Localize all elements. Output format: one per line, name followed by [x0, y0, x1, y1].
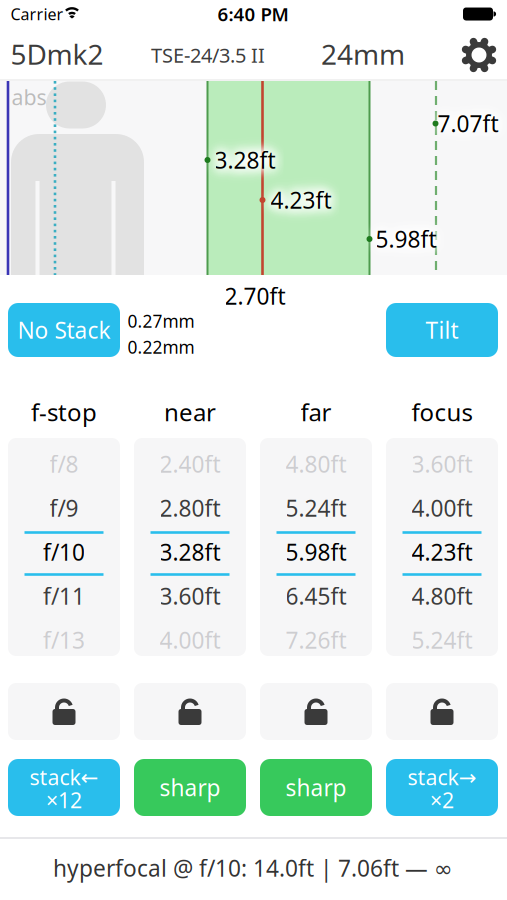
- staticText: ×2: [430, 786, 454, 814]
- staticText: 5Dmk2: [10, 35, 103, 73]
- staticText: f/13: [43, 625, 85, 655]
- staticText: 0.22mm: [127, 335, 194, 358]
- button[interactable]: TSE-24/3.5 II: [151, 42, 265, 68]
- staticText: 4.23ft: [270, 185, 331, 215]
- staticText: Carrier: [10, 3, 63, 25]
- staticText: f/9: [49, 493, 78, 523]
- staticText: f/11: [43, 581, 85, 611]
- staticText: 3.60ft: [411, 449, 472, 479]
- staticText: 6.45ft: [285, 581, 346, 611]
- button[interactable]: sharp: [134, 759, 246, 816]
- staticText: 2.40ft: [159, 449, 220, 479]
- button[interactable]: Lock near: [134, 683, 246, 740]
- staticText: far: [300, 396, 331, 428]
- button[interactable]: sharp: [260, 759, 372, 816]
- staticText: 0.27mm: [127, 309, 194, 332]
- staticText: near: [164, 396, 216, 428]
- staticText: 7.26ft: [285, 625, 346, 655]
- staticText: 4.23ft: [411, 537, 472, 567]
- staticText: f/8: [49, 449, 78, 479]
- button[interactable]: Lock focus: [386, 683, 498, 740]
- button[interactable]: f-stop picker: [8, 438, 120, 656]
- staticText: 4.80ft: [411, 581, 472, 611]
- staticText: 4.80ft: [285, 449, 346, 479]
- staticText: 3.60ft: [159, 581, 220, 611]
- staticText: 6:40 PM: [217, 2, 288, 26]
- staticText: 7.07ft: [437, 108, 498, 138]
- staticText: 5.98ft: [285, 537, 346, 567]
- button[interactable]: stack←: [8, 759, 120, 816]
- staticText: 3.28ft: [159, 537, 220, 567]
- button[interactable]: far picker: [260, 438, 372, 656]
- button[interactable]: near picker: [134, 438, 246, 656]
- button[interactable]: 24mm: [321, 35, 405, 73]
- staticText: f-stop: [31, 396, 97, 428]
- staticText: hyperfocal @ f/10: 14.0ft | 7.06ft — ∞: [53, 853, 453, 883]
- staticText: ×12: [46, 786, 82, 814]
- staticText: 2.80ft: [159, 493, 220, 523]
- staticText: TSE-24/3.5 II: [151, 42, 265, 68]
- button[interactable]: Settings: [459, 35, 499, 75]
- staticText: 4.00ft: [159, 625, 220, 655]
- staticText: 2.70ft: [224, 281, 285, 311]
- staticText: No Stack: [17, 315, 110, 345]
- staticText: sharp: [159, 772, 220, 802]
- button[interactable]: 5Dmk2: [10, 35, 103, 73]
- button[interactable]: stack→: [386, 759, 498, 816]
- staticText: 5.98ft: [375, 224, 436, 254]
- staticText: 5.24ft: [411, 625, 472, 655]
- staticText: sharp: [285, 772, 346, 802]
- staticText: 3.28ft: [214, 145, 275, 175]
- staticText: 4.00ft: [411, 493, 472, 523]
- staticText: 24mm: [321, 35, 405, 73]
- button[interactable]: Lock far: [260, 683, 372, 740]
- staticText: focus: [411, 396, 472, 428]
- staticText: f/10: [43, 537, 85, 567]
- staticText: stack→: [407, 763, 476, 791]
- staticText: Tilt: [425, 315, 458, 345]
- button[interactable]: Lock f-stop: [8, 683, 120, 740]
- staticText: stack←: [29, 763, 98, 791]
- button[interactable]: Tilt: [386, 303, 498, 357]
- button[interactable]: No Stack: [8, 303, 120, 357]
- staticText: abs: [11, 83, 46, 111]
- staticText: 5.24ft: [285, 493, 346, 523]
- button[interactable]: focus picker: [386, 438, 498, 656]
